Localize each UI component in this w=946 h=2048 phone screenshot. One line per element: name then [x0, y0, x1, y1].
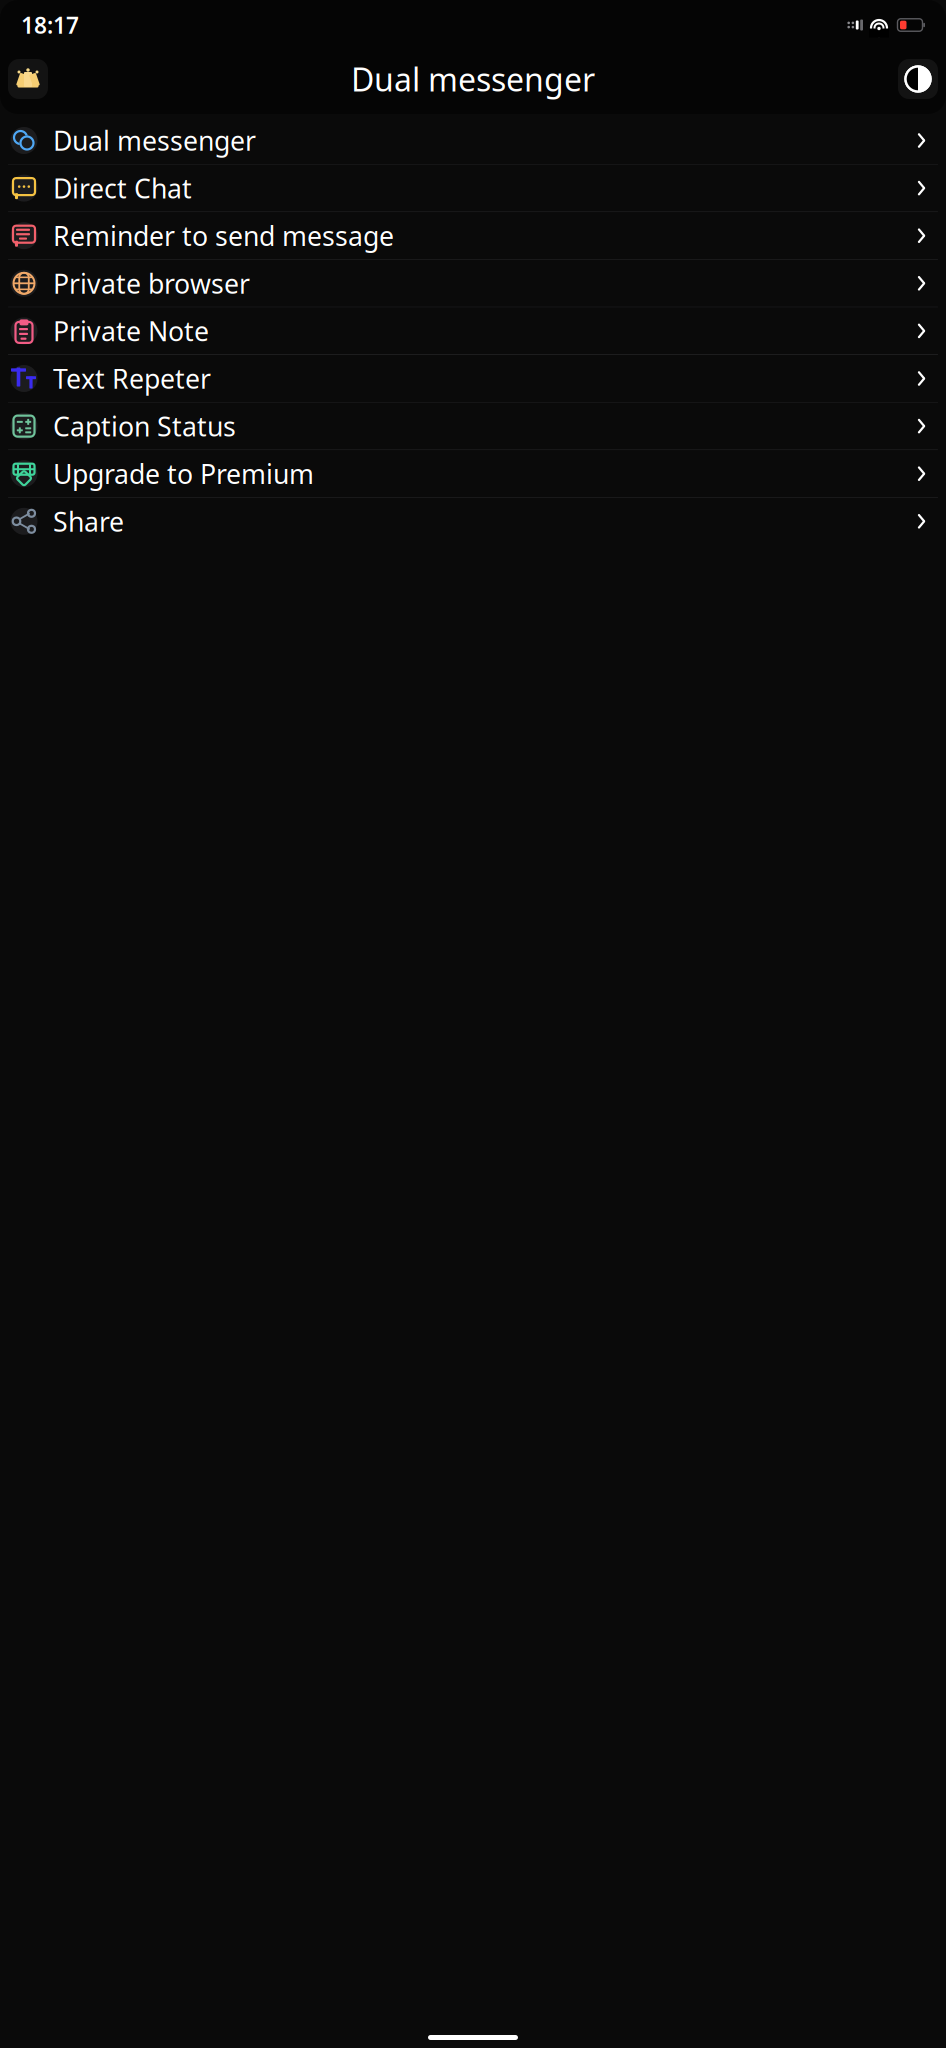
staticText: Private browser: [53, 266, 250, 301]
staticText: Dual messenger: [53, 123, 256, 158]
button[interactable]: Direct Chat: [0, 165, 946, 212]
button[interactable]: Reminder to send message: [0, 212, 946, 259]
staticText: Caption Status: [53, 408, 236, 444]
staticText: Direct Chat: [53, 170, 192, 206]
button[interactable]: Upgrade to Premium: [0, 450, 946, 497]
staticText: Upgrade to Premium: [53, 456, 314, 491]
staticText: 18:17: [21, 10, 79, 40]
button[interactable]: Private browser: [0, 260, 946, 307]
button[interactable]: Dual messenger: [0, 117, 946, 164]
staticText: Dual messenger: [351, 58, 595, 100]
button[interactable]: Private Note: [0, 307, 946, 354]
button[interactable]: Text Repeter: [0, 355, 946, 402]
staticText: Share: [53, 504, 124, 539]
button[interactable]: Premium: [8, 59, 48, 99]
button[interactable]: Caption Status: [0, 403, 946, 450]
button[interactable]: Share: [0, 498, 946, 545]
button[interactable]: Theme: [898, 59, 938, 99]
staticText: Private Note: [53, 313, 209, 349]
staticText: Text Repeter: [53, 361, 211, 396]
staticText: Reminder to send message: [53, 218, 394, 253]
